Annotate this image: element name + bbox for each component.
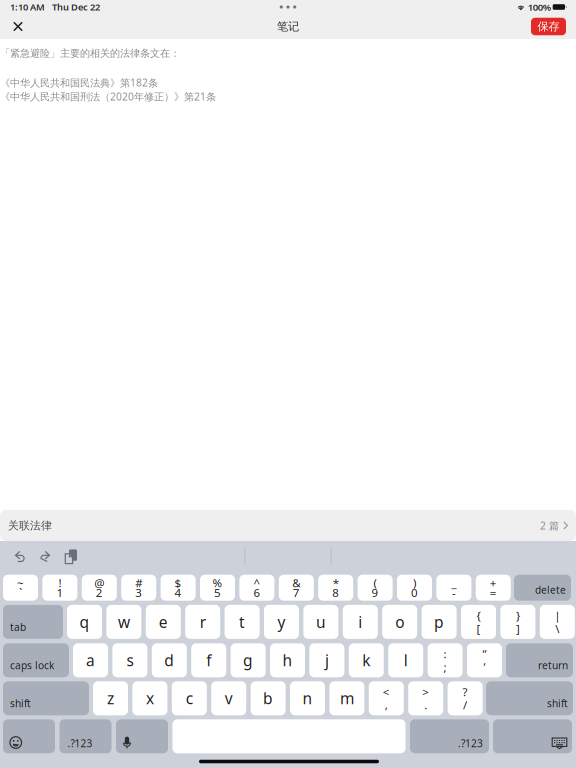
staticText: 9: [372, 585, 379, 600]
button[interactable]: c: [172, 681, 207, 715]
button[interactable]: }: [500, 605, 535, 639]
button[interactable]: {: [461, 605, 496, 639]
button[interactable]: o: [382, 605, 417, 639]
staticText: e: [159, 611, 168, 632]
staticText: w: [118, 611, 130, 632]
button[interactable]: w: [106, 605, 141, 639]
button[interactable]: a: [73, 643, 108, 677]
staticText: shift: [547, 696, 568, 710]
staticText: 关联法律: [8, 519, 52, 532]
button[interactable]: ?: [448, 681, 483, 715]
button[interactable]: u: [303, 605, 338, 639]
button[interactable]: $: [161, 575, 196, 601]
staticText: s: [126, 650, 133, 671]
staticText: .?123: [458, 736, 483, 750]
staticText: 保存: [537, 19, 559, 33]
staticText: o: [395, 611, 404, 632]
button[interactable]: d: [152, 643, 187, 677]
button[interactable]: s: [112, 643, 147, 677]
button[interactable]: Numbers and symbols: [410, 719, 489, 753]
staticText: v: [225, 688, 233, 709]
button[interactable]: :: [428, 643, 463, 677]
button[interactable]: ~: [3, 575, 38, 601]
button[interactable]: Redo: [33, 544, 57, 568]
button[interactable]: f: [191, 643, 226, 677]
staticText: d: [164, 650, 174, 671]
button[interactable]: @: [82, 575, 117, 601]
staticText: `: [19, 585, 22, 600]
button[interactable]: r: [185, 605, 220, 639]
staticText: z: [107, 688, 114, 709]
button[interactable]: delete: [514, 575, 571, 601]
button[interactable]: <: [369, 681, 404, 715]
button[interactable]: Undo: [8, 544, 32, 568]
staticText: f: [206, 650, 211, 671]
button[interactable]: return: [506, 643, 573, 677]
staticText: y: [277, 611, 285, 632]
button[interactable]: e: [146, 605, 181, 639]
button[interactable]: i: [343, 605, 378, 639]
button[interactable]: tab: [3, 605, 63, 639]
staticText: 0: [411, 585, 418, 600]
button[interactable]: g: [231, 643, 266, 677]
button[interactable]: [172, 719, 405, 753]
staticText: x: [146, 688, 154, 709]
button[interactable]: Emoji: [3, 719, 55, 753]
staticText: ~: [17, 575, 24, 591]
staticText: 4: [175, 585, 182, 600]
button[interactable]: ^: [239, 575, 274, 601]
button[interactable]: 关联法律: [0, 510, 576, 541]
button[interactable]: n: [290, 681, 325, 715]
staticText: 8: [332, 585, 339, 600]
staticText: /: [463, 697, 467, 713]
button[interactable]: h: [270, 643, 305, 677]
button[interactable]: (: [358, 575, 393, 601]
staticText: t: [239, 611, 245, 632]
button[interactable]: v: [211, 681, 246, 715]
button[interactable]: ”: [467, 643, 502, 677]
button[interactable]: 保存: [531, 18, 566, 35]
staticText: \: [555, 621, 559, 636]
staticText: =: [490, 585, 497, 600]
button[interactable]: shift: [486, 681, 573, 715]
button[interactable]: %: [200, 575, 235, 601]
button[interactable]: >: [408, 681, 443, 715]
button[interactable]: y: [264, 605, 299, 639]
staticText: !: [58, 575, 61, 591]
button[interactable]: t: [225, 605, 260, 639]
staticText: 《中华人民共和国民法典》第182条: [0, 76, 158, 90]
staticText: 1: [56, 585, 63, 600]
button[interactable]: Numbers and symbols: [59, 719, 111, 753]
button[interactable]: Hide keyboard: [493, 719, 572, 753]
staticText: 7: [293, 585, 300, 600]
button[interactable]: *: [318, 575, 353, 601]
button[interactable]: _: [436, 575, 471, 601]
button[interactable]: q: [67, 605, 102, 639]
staticText: &: [292, 575, 300, 591]
button[interactable]: j: [309, 643, 344, 677]
button[interactable]: m: [329, 681, 364, 715]
button[interactable]: b: [251, 681, 286, 715]
button[interactable]: &: [279, 575, 314, 601]
button[interactable]: Paste: [59, 545, 83, 569]
button[interactable]: l: [388, 643, 423, 677]
button[interactable]: p: [422, 605, 457, 639]
button[interactable]: Close: [6, 14, 30, 38]
staticText: p: [434, 611, 444, 632]
button[interactable]: k: [349, 643, 384, 677]
button[interactable]: #: [121, 575, 156, 601]
staticText: ?: [463, 684, 468, 699]
button[interactable]: caps lock: [3, 643, 69, 677]
staticText: g: [243, 650, 253, 671]
button[interactable]: ): [397, 575, 432, 601]
staticText: j: [325, 650, 329, 671]
button[interactable]: x: [132, 681, 167, 715]
button[interactable]: |: [540, 605, 575, 639]
button[interactable]: !: [42, 575, 77, 601]
button[interactable]: Dictation: [116, 719, 168, 753]
staticText: r: [200, 611, 206, 632]
button[interactable]: +: [476, 575, 511, 601]
staticText: a: [86, 650, 95, 671]
button[interactable]: z: [93, 681, 128, 715]
button[interactable]: shift: [3, 681, 89, 715]
